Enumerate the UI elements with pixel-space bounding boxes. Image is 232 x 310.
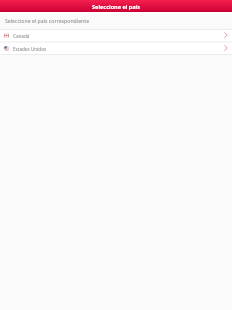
button[interactable]: Abrir Canadá: [222, 29, 230, 42]
other: Canadá: [4, 33, 9, 38]
button[interactable]: Canadá: [0, 29, 232, 42]
other: Estados Unidos: [4, 46, 9, 51]
staticText: Canadá: [13, 33, 30, 39]
staticText: Seleccione el país: [92, 3, 140, 10]
button[interactable]: Abrir Estados Unidos: [222, 42, 230, 55]
staticText: Estados Unidos: [13, 46, 47, 52]
button[interactable]: Estados Unidos: [0, 42, 232, 55]
button[interactable]: Seleccione el país: [0, 0, 232, 12]
staticText: Seleccione el país correspondiente: [5, 17, 90, 24]
